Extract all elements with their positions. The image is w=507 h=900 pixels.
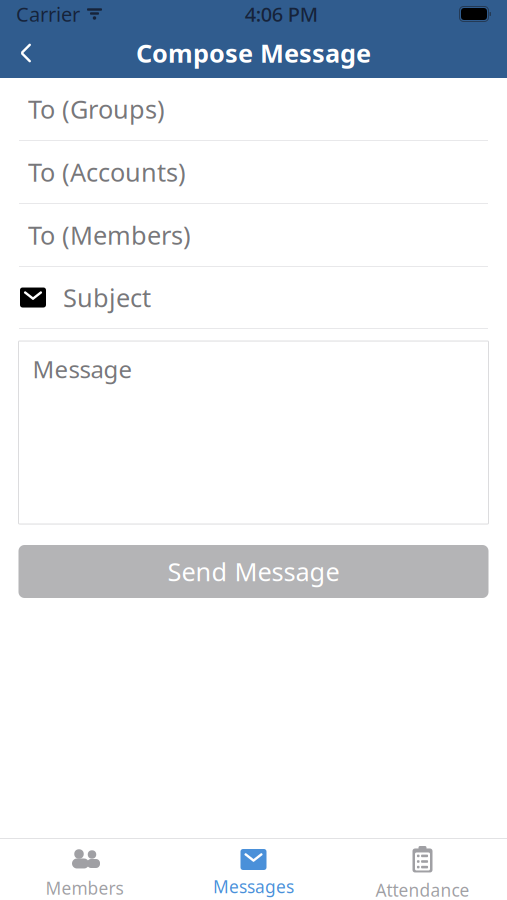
- staticText: To (Members): [28, 218, 191, 252]
- button[interactable]: Messages: [169, 841, 338, 898]
- staticText: To (Groups): [28, 92, 165, 126]
- staticText: Messages: [213, 875, 294, 898]
- staticText: Send Message: [167, 555, 339, 588]
- staticText: 4:06 PM: [245, 1, 318, 27]
- button[interactable]: To (Accounts): [0, 141, 507, 203]
- staticText: Compose Message: [136, 36, 371, 70]
- staticText: Message: [32, 353, 132, 385]
- button[interactable]: Attendance: [338, 837, 507, 900]
- button[interactable]: Members: [0, 839, 169, 899]
- button[interactable]: To (Members): [0, 204, 507, 266]
- button[interactable]: To (Groups): [0, 78, 507, 140]
- button[interactable]: Back: [0, 28, 52, 78]
- staticText: Subject: [63, 281, 151, 314]
- staticText: Attendance: [375, 878, 469, 900]
- button[interactable]: Subject: [0, 267, 507, 328]
- staticText: Carrier: [16, 1, 80, 27]
- staticText: To (Accounts): [28, 155, 186, 189]
- button[interactable]: Message: [18, 341, 488, 524]
- staticText: Members: [45, 876, 123, 899]
- button[interactable]: Send Message: [18, 545, 488, 598]
